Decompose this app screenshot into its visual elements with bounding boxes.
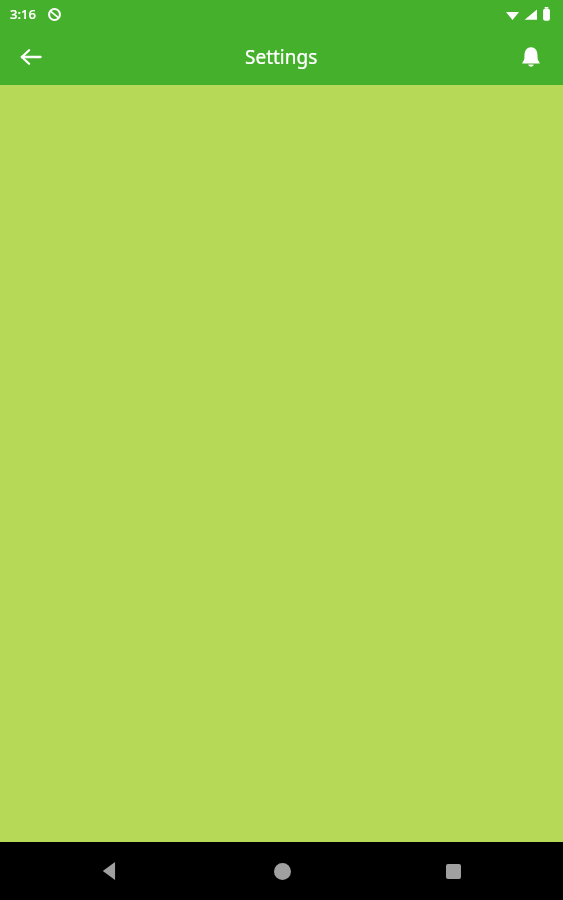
staticText: Settings <box>245 44 318 70</box>
button[interactable]: Back <box>8 34 54 80</box>
staticText: 3:16 <box>10 5 36 23</box>
button[interactable]: Notifications <box>509 35 553 79</box>
button[interactable]: Back <box>90 851 130 891</box>
button[interactable]: Recent apps <box>433 851 473 891</box>
button[interactable]: Home <box>262 851 302 891</box>
